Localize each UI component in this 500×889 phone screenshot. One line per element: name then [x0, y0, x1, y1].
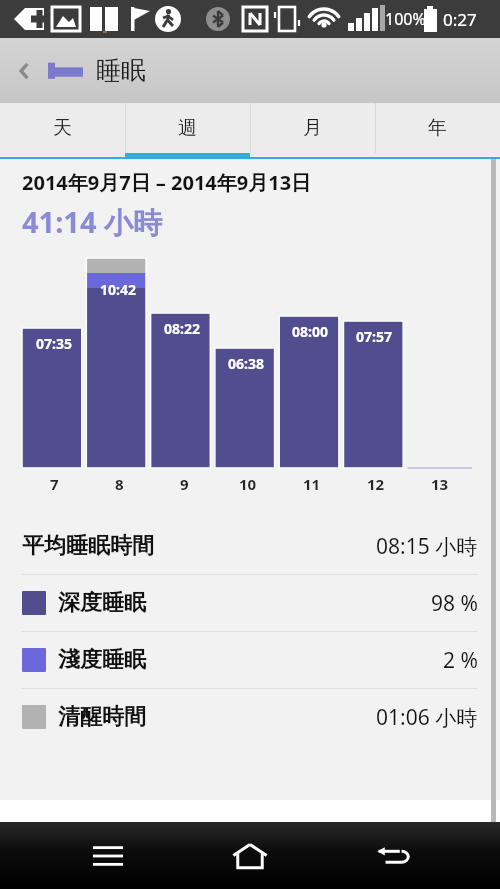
staticText: 06:38 [228, 354, 264, 373]
staticText: 11 [303, 474, 321, 494]
button[interactable]: Back [8, 54, 42, 88]
button[interactable]: Menu [73, 822, 143, 889]
staticText: 淺度睡眠 [58, 646, 146, 674]
staticText: 清醒時間 [58, 703, 146, 731]
staticText: 98 % [431, 589, 478, 618]
staticText: 10 [239, 474, 257, 494]
staticText: 天 [53, 116, 72, 140]
staticText: 08:00 [292, 322, 328, 341]
button[interactable]: Home [215, 822, 285, 889]
staticText: 10:42 [100, 280, 136, 299]
button[interactable]: 週 [125, 103, 250, 153]
staticText: 週 [178, 116, 197, 140]
button[interactable]: 年 [375, 103, 500, 153]
staticText: 8 [115, 474, 124, 494]
staticText: 年 [428, 116, 447, 140]
staticText: 08:15 小時 [376, 532, 478, 561]
button[interactable]: 淺度睡眠 [0, 632, 500, 688]
button[interactable]: 天 [0, 103, 125, 153]
staticText: 2 % [443, 646, 478, 675]
staticText: 100% [385, 8, 426, 30]
staticText: 0:27 [443, 8, 477, 31]
button[interactable]: 深度睡眠 [0, 575, 500, 631]
staticText: 月 [303, 116, 322, 140]
button[interactable]: Back [358, 822, 428, 889]
staticText: 07:57 [356, 327, 392, 346]
staticText: 睡眠 [96, 55, 146, 86]
staticText: 41:14 小時 [22, 202, 163, 242]
button[interactable]: 清醒時間 [0, 689, 500, 745]
button[interactable]: 平均睡眠時間 [0, 518, 500, 574]
button[interactable]: 月 [250, 103, 375, 153]
staticText: 平均睡眠時間 [22, 532, 154, 560]
staticText: 13 [431, 474, 449, 494]
staticText: 2014年9月7日 – 2014年9月13日 [22, 169, 312, 196]
staticText: 08:22 [164, 319, 200, 338]
staticText: 深度睡眠 [58, 589, 146, 617]
staticText: 12 [367, 474, 385, 494]
staticText: 7 [50, 474, 59, 494]
staticText: 01:06 小時 [376, 703, 478, 732]
staticText: 07:35 [36, 334, 72, 353]
staticText: 9 [180, 474, 189, 494]
